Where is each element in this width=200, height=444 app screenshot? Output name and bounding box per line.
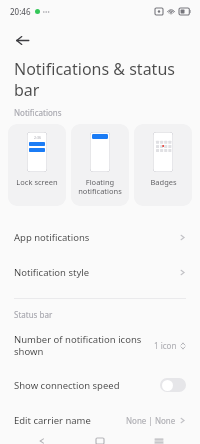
button[interactable]: Edit carrier name xyxy=(0,403,200,438)
staticText: Notifications xyxy=(14,107,62,118)
staticText: None | None xyxy=(126,415,176,426)
button[interactable]: Back xyxy=(25,438,59,444)
staticText: Floating notifications xyxy=(78,177,122,196)
button[interactable]: Notification style xyxy=(0,255,200,290)
staticText: Notifications & status bar xyxy=(14,58,176,101)
staticText: Edit carrier name xyxy=(14,414,120,427)
staticText: Number of notification icons shown xyxy=(14,333,148,358)
button[interactable]: Show connection speed toggle xyxy=(160,378,186,392)
staticText: 20:46 xyxy=(10,6,31,17)
button[interactable]: Number of notification icons shown xyxy=(0,324,200,367)
staticText: Show connection speed xyxy=(14,379,154,392)
staticText: Lock screen xyxy=(16,177,58,187)
button[interactable]: Floating notifications xyxy=(71,124,129,206)
button[interactable]: Recent apps xyxy=(142,438,176,444)
staticText: App notifications xyxy=(14,231,173,244)
button[interactable]: Back xyxy=(6,24,38,56)
button[interactable]: 2:36 xyxy=(8,124,66,206)
button[interactable]: Show connection speed xyxy=(0,367,200,403)
staticText: 2:36 xyxy=(34,135,41,140)
staticText: 1 icon xyxy=(154,340,177,351)
button[interactable]: App notifications xyxy=(0,220,200,255)
button[interactable]: Home xyxy=(83,438,117,444)
staticText: Badges xyxy=(150,177,177,187)
staticText: Notification style xyxy=(14,266,173,279)
staticText: Status bar xyxy=(14,309,53,320)
button[interactable]: Badges xyxy=(134,124,192,206)
